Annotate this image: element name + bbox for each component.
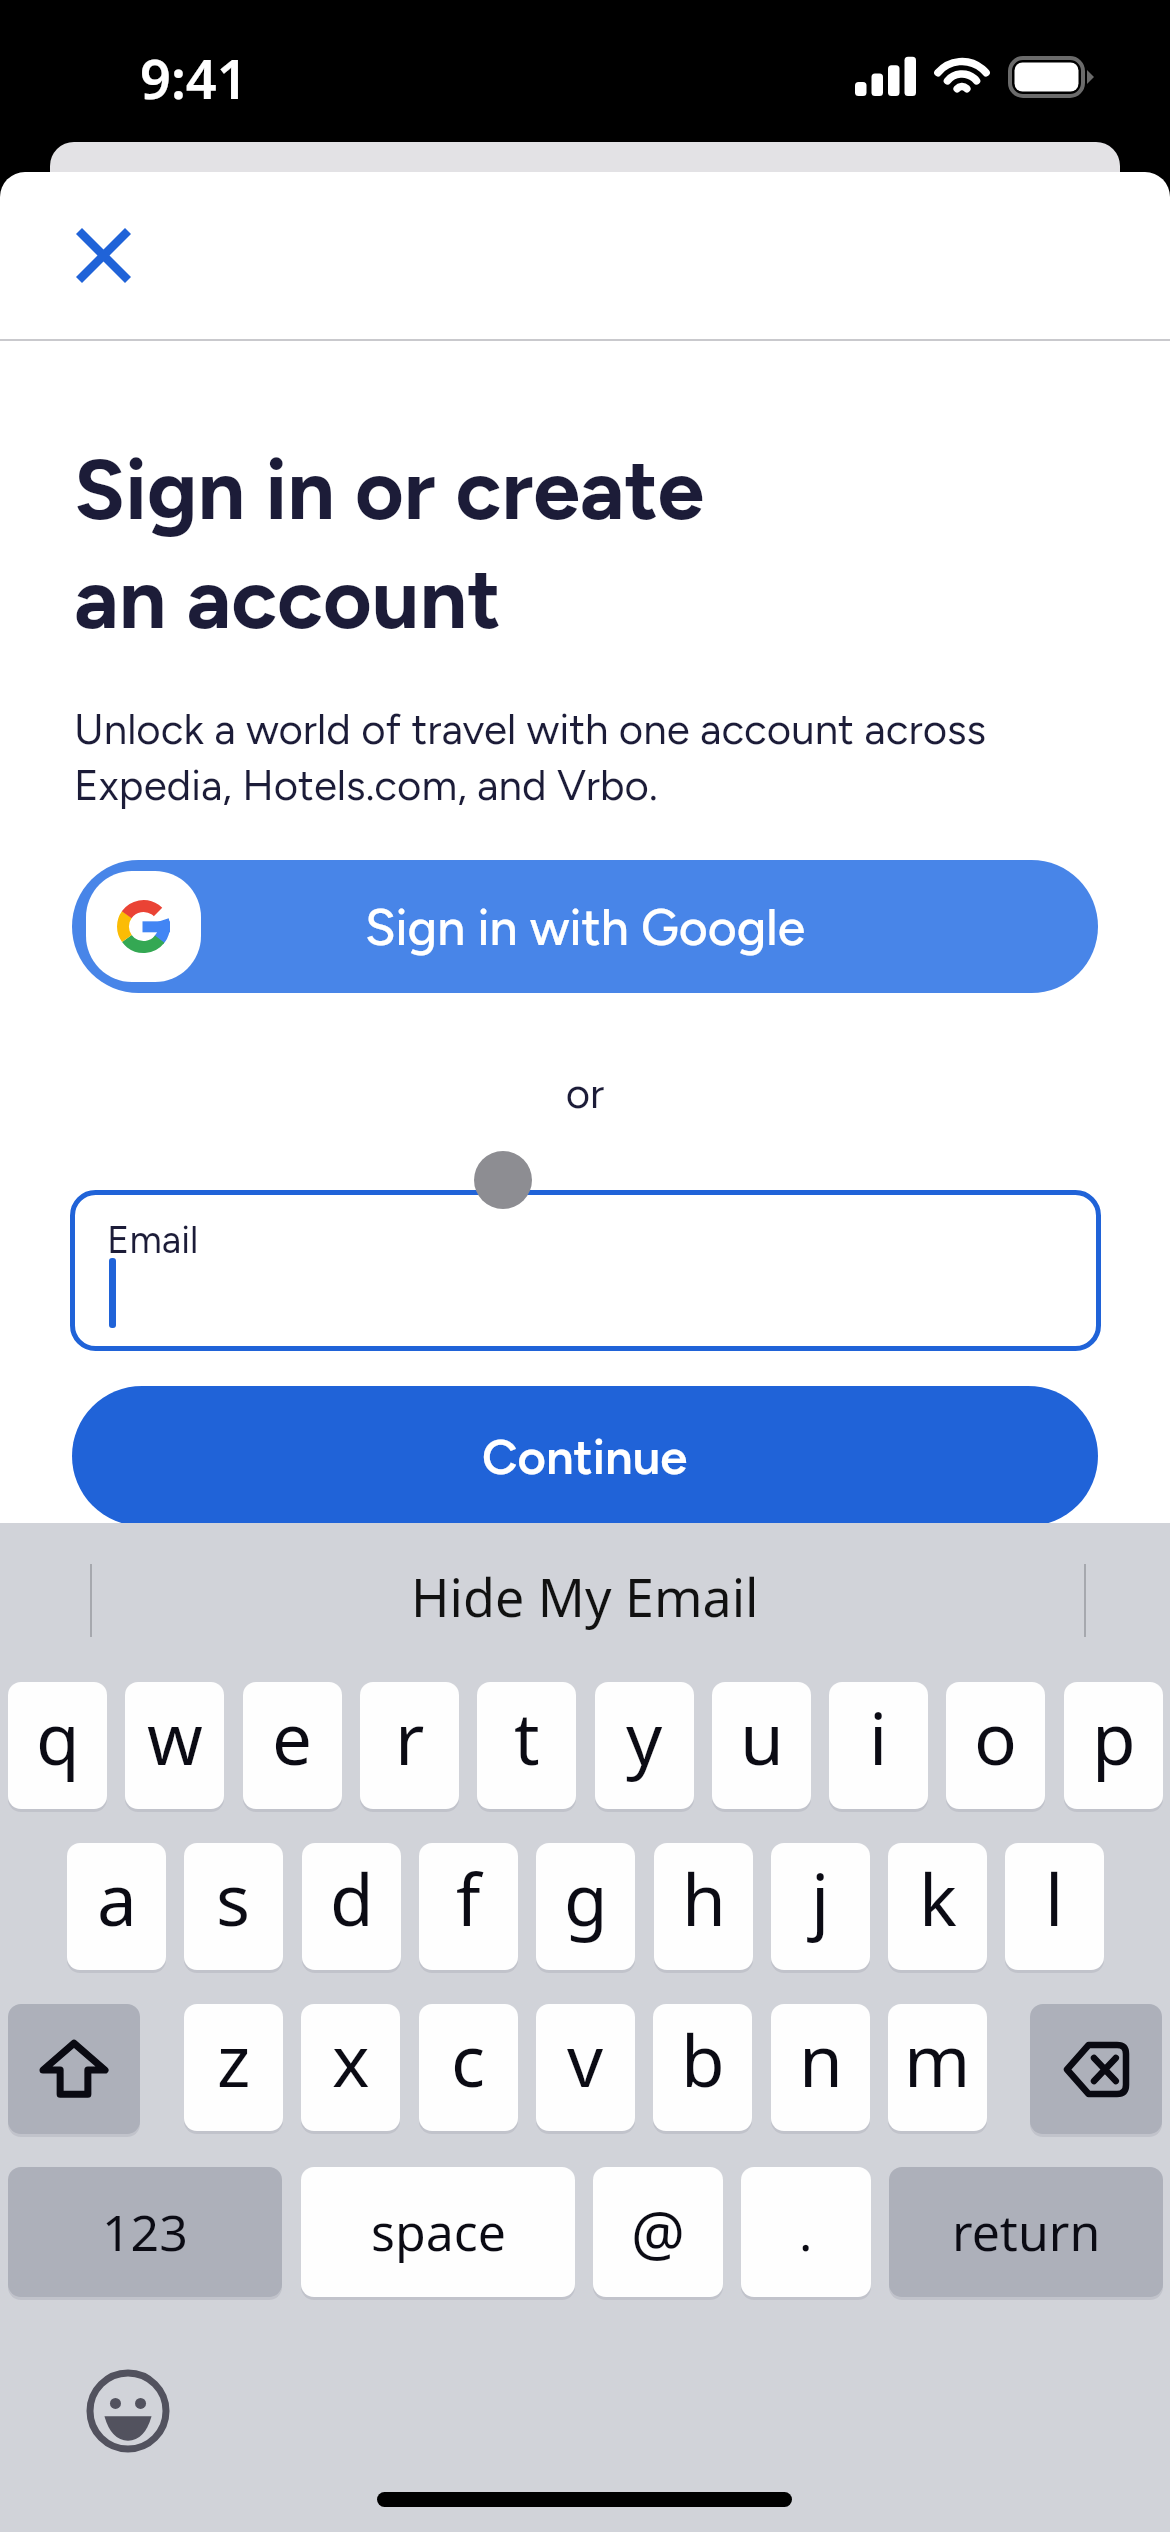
- staticText: p: [1092, 1689, 1136, 1786]
- staticText: Unlock a world of travel with one accoun…: [74, 704, 987, 811]
- staticText: b: [681, 2011, 725, 2108]
- staticText: l: [1045, 1850, 1064, 1947]
- button[interactable]: s: [184, 1843, 283, 1970]
- button[interactable]: Emoji keyboard: [84, 2367, 172, 2455]
- staticText: t: [514, 1689, 540, 1786]
- button[interactable]: a: [67, 1843, 166, 1970]
- button[interactable]: y: [595, 1682, 694, 1809]
- staticText: 123: [102, 2198, 188, 2266]
- staticText: h: [682, 1850, 726, 1947]
- staticText: g: [564, 1850, 608, 1947]
- button[interactable]: m: [888, 2004, 987, 2131]
- button[interactable]: Sign in with Google: [72, 860, 1098, 993]
- staticText: return: [952, 2198, 1101, 2266]
- staticText: x: [332, 2011, 370, 2108]
- staticText: Sign in or create an account: [74, 439, 705, 649]
- staticText: Hide My Email: [411, 1561, 759, 1632]
- button[interactable]: Email: [70, 1190, 1101, 1351]
- staticText: u: [740, 1689, 784, 1786]
- button[interactable]: return: [889, 2167, 1163, 2297]
- staticText: z: [217, 2011, 251, 2108]
- button[interactable]: p: [1064, 1682, 1163, 1809]
- staticText: y: [626, 1689, 663, 1786]
- button[interactable]: x: [301, 2004, 400, 2131]
- button[interactable]: t: [477, 1682, 576, 1809]
- button[interactable]: j: [771, 1843, 870, 1970]
- staticText: f: [456, 1850, 481, 1947]
- staticText: e: [272, 1689, 313, 1786]
- button[interactable]: e: [243, 1682, 342, 1809]
- button[interactable]: u: [712, 1682, 811, 1809]
- staticText: v: [567, 2011, 604, 2108]
- staticText: m: [904, 2011, 971, 2108]
- button[interactable]: Hide My Email: [0, 1549, 1170, 1644]
- staticText: @: [631, 2191, 685, 2273]
- button[interactable]: r: [360, 1682, 459, 1809]
- staticText: Email: [107, 1217, 199, 1263]
- staticText: Sign in with Google: [365, 897, 806, 957]
- staticText: space: [371, 2198, 506, 2266]
- staticText: 9:41: [140, 41, 248, 115]
- staticText: k: [919, 1850, 957, 1947]
- button[interactable]: @: [593, 2167, 723, 2297]
- staticText: Continue: [482, 1427, 688, 1486]
- staticText: r: [395, 1689, 425, 1786]
- button[interactable]: g: [536, 1843, 635, 1970]
- button[interactable]: o: [946, 1682, 1045, 1809]
- button[interactable]: z: [184, 2004, 283, 2131]
- staticText: a: [97, 1850, 137, 1947]
- button[interactable]: d: [302, 1843, 401, 1970]
- staticText: w: [147, 1689, 203, 1786]
- staticText: s: [216, 1850, 251, 1947]
- staticText: c: [451, 2011, 486, 2108]
- button[interactable]: .: [741, 2167, 871, 2297]
- button[interactable]: w: [125, 1682, 224, 1809]
- button[interactable]: k: [888, 1843, 987, 1970]
- button[interactable]: Shift: [8, 2004, 140, 2134]
- staticText: q: [36, 1689, 80, 1786]
- button[interactable]: v: [536, 2004, 635, 2131]
- staticText: d: [330, 1850, 374, 1947]
- button[interactable]: h: [654, 1843, 753, 1970]
- button[interactable]: c: [419, 2004, 518, 2131]
- button[interactable]: Backspace: [1030, 2004, 1162, 2134]
- button[interactable]: f: [419, 1843, 518, 1970]
- button[interactable]: 123: [8, 2167, 282, 2297]
- staticText: .: [799, 2198, 813, 2266]
- button[interactable]: Close: [62, 214, 144, 296]
- button[interactable]: n: [771, 2004, 870, 2131]
- button[interactable]: q: [8, 1682, 107, 1809]
- button[interactable]: space: [301, 2167, 575, 2297]
- staticText: n: [799, 2011, 843, 2108]
- button[interactable]: i: [829, 1682, 928, 1809]
- staticText: i: [869, 1689, 888, 1786]
- button[interactable]: Continue: [72, 1386, 1098, 1526]
- button[interactable]: l: [1005, 1843, 1104, 1970]
- button[interactable]: b: [653, 2004, 752, 2131]
- staticText: j: [811, 1850, 830, 1947]
- staticText: o: [974, 1689, 1017, 1786]
- staticText: or: [0, 1068, 1170, 1118]
